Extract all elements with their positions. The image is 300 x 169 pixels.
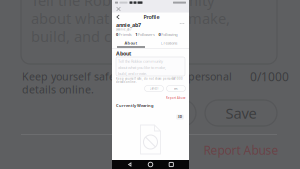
button[interactable]: Report Abuse [164,96,186,100]
staticText: Tell the Roblox community [118,59,163,64]
staticText: 0 [116,32,118,37]
button[interactable]: Toggle 3D view [176,114,184,119]
staticText: 1 [135,32,137,37]
staticText: Followers [138,32,155,37]
staticText: About [124,40,137,46]
button[interactable]: About [112,39,150,46]
staticText: Profile [143,13,159,21]
staticText: Friends [119,32,132,37]
staticText: Tell the Roblox community [31,0,214,10]
button[interactable]: More options [178,21,186,26]
staticText: details online. [22,82,94,96]
staticText: Creations [160,40,177,46]
staticText: Cancel [137,103,182,123]
staticText: details online. [116,80,137,84]
staticText: Report Abuse [203,142,278,158]
staticText: About [116,50,131,57]
button[interactable]: Cancel [144,85,163,91]
button[interactable]: Cancel [124,100,196,126]
staticText: 0/1000 [172,77,183,80]
staticText: 3D [178,115,182,119]
button[interactable]: Back [114,13,122,21]
button[interactable]: Close [114,4,123,13]
staticText: annie_ab7 [116,21,141,29]
button[interactable]: Save [166,85,185,91]
button[interactable]: Home [147,161,153,167]
staticText: build, and create. [118,71,147,76]
button[interactable]: Save [205,100,277,126]
staticText: Currently Wearing [116,103,154,108]
staticText: 0 [158,32,160,37]
staticText: about what you like to make, [31,8,230,28]
staticText: Save [225,103,256,123]
staticText: Following [161,32,177,37]
staticText: @annie_ab7 [116,28,132,31]
staticText: about what you like to make, [118,65,166,70]
staticText: Save [173,87,178,90]
button[interactable]: Report Abuse [201,143,281,156]
staticText: build, and create. [31,26,150,46]
button[interactable]: Creations [150,39,188,46]
staticText: Keep yourself safe, do not share persona… [116,77,175,80]
staticText: 0/1000 [250,68,289,84]
button[interactable]: Back [127,161,133,167]
staticText: Cancel [149,87,158,90]
button[interactable]: Recent apps [168,161,174,167]
staticText: Keep yourself safe, do not share persona… [22,69,232,83]
staticText: Report Abuse [166,96,186,100]
